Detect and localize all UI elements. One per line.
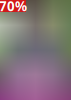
staticText: 70%	[0, 0, 27, 15]
